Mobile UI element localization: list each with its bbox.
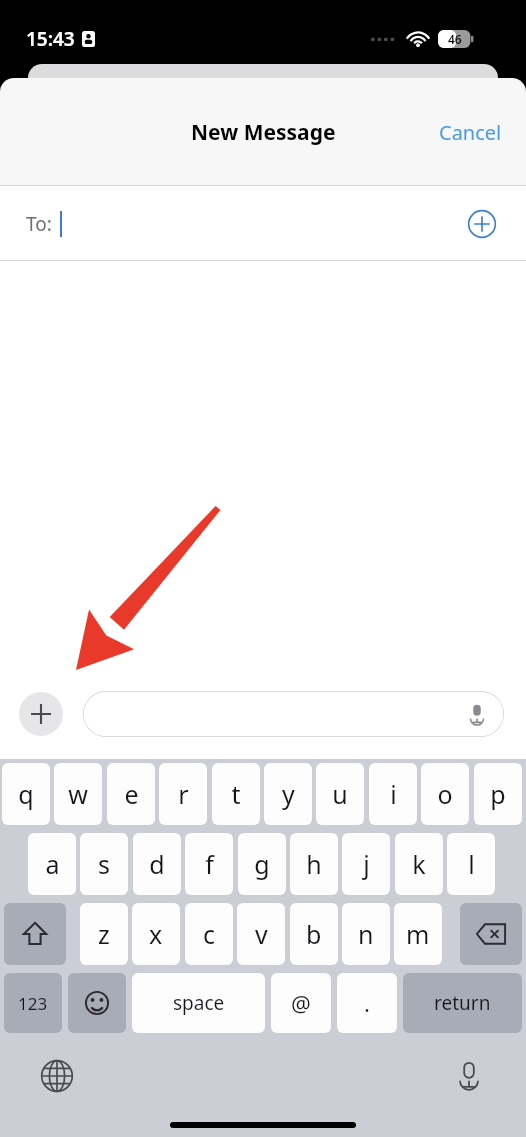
staticText: New Message xyxy=(191,118,336,147)
staticText: l xyxy=(468,847,475,881)
button[interactable]: Cancel xyxy=(429,111,512,154)
staticText: m xyxy=(406,917,430,951)
staticText: d xyxy=(149,847,165,881)
button[interactable]: c xyxy=(185,903,233,965)
staticText: a xyxy=(45,847,60,881)
other: Dictate xyxy=(464,701,490,727)
button[interactable]: h xyxy=(290,833,338,895)
button[interactable]: p xyxy=(474,763,522,825)
button[interactable]: m xyxy=(394,903,442,965)
button[interactable]: Add attachment xyxy=(19,692,63,736)
button[interactable]: space xyxy=(132,973,265,1033)
button[interactable]: v xyxy=(237,903,285,965)
button[interactable]: n xyxy=(342,903,390,965)
staticText: y xyxy=(282,777,295,811)
button[interactable]: Backspace xyxy=(460,903,522,965)
staticText: s xyxy=(98,847,110,881)
staticText: return xyxy=(434,990,491,1016)
button[interactable]: u xyxy=(316,763,364,825)
button[interactable]: @ xyxy=(271,973,331,1033)
staticText: space xyxy=(173,990,225,1016)
button[interactable]: g xyxy=(238,833,286,895)
staticText: p xyxy=(490,777,506,811)
button[interactable]: e xyxy=(107,763,155,825)
staticText: v xyxy=(255,917,268,951)
staticText: r xyxy=(178,777,189,811)
staticText: o xyxy=(437,777,453,811)
staticText: u xyxy=(332,777,348,811)
staticText: j xyxy=(363,847,370,881)
button[interactable]: d xyxy=(133,833,181,895)
staticText: 46 xyxy=(448,31,462,47)
staticText: w xyxy=(68,777,88,811)
button[interactable]: x xyxy=(132,903,180,965)
button[interactable]: i xyxy=(369,763,417,825)
button[interactable]: . xyxy=(337,973,397,1033)
button[interactable]: l xyxy=(447,833,495,895)
staticText: z xyxy=(98,917,110,951)
staticText: n xyxy=(358,917,374,951)
button[interactable]: New Message xyxy=(185,112,342,153)
button[interactable]: w xyxy=(54,763,102,825)
button[interactable]: Change keyboard language xyxy=(34,1053,80,1099)
button[interactable]: 123 xyxy=(4,973,62,1033)
button[interactable]: y xyxy=(264,763,312,825)
button[interactable]: t xyxy=(212,763,260,825)
button[interactable]: Add contact xyxy=(460,202,504,246)
staticText: q xyxy=(18,777,34,811)
button[interactable]: r xyxy=(159,763,207,825)
button[interactable]: f xyxy=(185,833,233,895)
button[interactable]: k xyxy=(395,833,443,895)
staticText: . xyxy=(364,988,370,1018)
staticText: x xyxy=(149,917,163,951)
staticText: @ xyxy=(291,988,311,1018)
staticText: 123 xyxy=(18,992,48,1015)
staticText: h xyxy=(306,847,322,881)
button[interactable]: Dictate xyxy=(83,691,504,737)
staticText: i xyxy=(390,777,397,811)
staticText: f xyxy=(205,847,214,881)
staticText: g xyxy=(254,847,270,881)
staticText: e xyxy=(124,777,139,811)
staticText: To: xyxy=(26,211,52,237)
button[interactable]: s xyxy=(80,833,128,895)
button[interactable]: Dictation xyxy=(446,1053,492,1099)
button[interactable]: Shift xyxy=(4,903,66,965)
button[interactable]: a xyxy=(28,833,76,895)
button[interactable]: q xyxy=(2,763,50,825)
button[interactable]: z xyxy=(80,903,128,965)
button[interactable]: return xyxy=(403,973,522,1033)
button[interactable]: Emoji xyxy=(68,973,126,1033)
staticText: 15:43 xyxy=(26,26,75,52)
button[interactable]: o xyxy=(421,763,469,825)
staticText: t xyxy=(231,777,241,811)
staticText: Cancel xyxy=(439,119,502,146)
button[interactable]: b xyxy=(290,903,338,965)
button[interactable]: j xyxy=(342,833,390,895)
staticText: c xyxy=(203,917,216,951)
staticText: b xyxy=(306,917,322,951)
staticText: k xyxy=(412,847,426,881)
